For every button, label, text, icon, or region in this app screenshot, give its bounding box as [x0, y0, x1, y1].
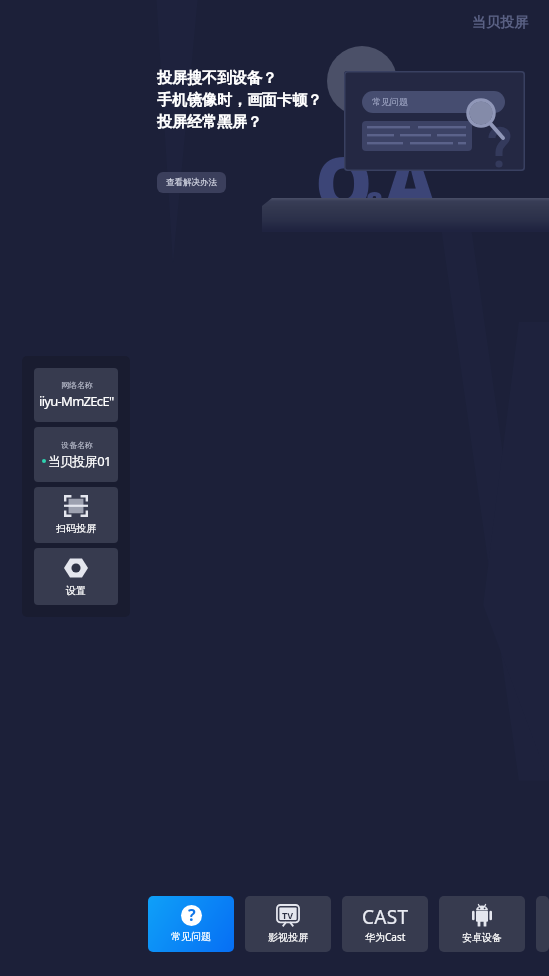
staticText: & — [364, 181, 390, 225]
staticText: 常见问题 — [171, 930, 211, 943]
button[interactable]: ? — [148, 896, 234, 952]
staticText: A — [384, 133, 437, 231]
button[interactable]: CAST — [342, 896, 428, 952]
other: Settings — [64, 557, 88, 579]
button[interactable]: TV — [245, 896, 331, 952]
staticText: 网络名称 — [61, 380, 93, 390]
staticText: 影视投屏 — [268, 931, 308, 944]
staticText: 设置 — [66, 584, 86, 597]
staticText: 当贝投屏 — [472, 14, 528, 32]
staticText: 设备名称 — [61, 440, 93, 450]
staticText: Q — [315, 133, 373, 231]
staticText: TV — [282, 909, 294, 921]
button[interactable]: 更多设备 — [536, 896, 549, 952]
staticText: 当贝投屏01 — [48, 452, 111, 470]
staticText: 扫码投屏 — [56, 522, 96, 535]
staticText: 安卓设备 — [462, 931, 502, 944]
button[interactable]: 查看解决办法 — [157, 172, 226, 193]
staticText: CAST — [362, 904, 409, 926]
button[interactable]: Scan QR to cast — [34, 487, 118, 543]
button[interactable]: 网络名称 — [34, 368, 118, 422]
button[interactable]: Settings — [34, 548, 118, 605]
staticText: ? — [188, 904, 196, 925]
staticText: 投屏搜不到设备？ 手机镜像时，画面卡顿？ 投屏经常黑屏？ — [157, 69, 322, 132]
staticText: 查看解决办法 — [166, 177, 217, 188]
button[interactable]: 设备名称 — [34, 427, 118, 482]
staticText: 华为Cast — [365, 930, 406, 944]
other: Scan QR to cast — [64, 495, 88, 517]
staticText: 常见问题 — [372, 96, 408, 107]
button[interactable]: 安卓设备 — [439, 896, 525, 952]
staticText: iiyu-MmZEcE" — [39, 392, 114, 410]
